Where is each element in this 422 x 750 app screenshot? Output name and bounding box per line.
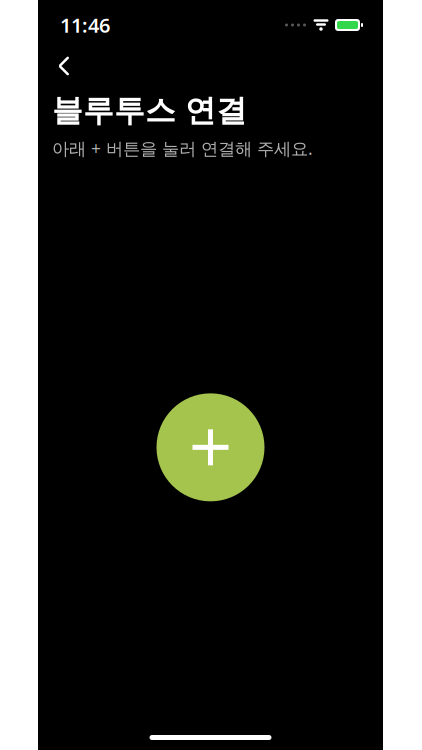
staticText: 11:46 <box>60 12 110 38</box>
button[interactable]: Add Bluetooth device <box>156 393 264 501</box>
staticText: 아래 + 버튼을 눌러 연결해 주세요. <box>52 137 313 160</box>
staticText: 블루투스 연결 <box>52 92 247 130</box>
button[interactable]: Back <box>44 46 84 86</box>
